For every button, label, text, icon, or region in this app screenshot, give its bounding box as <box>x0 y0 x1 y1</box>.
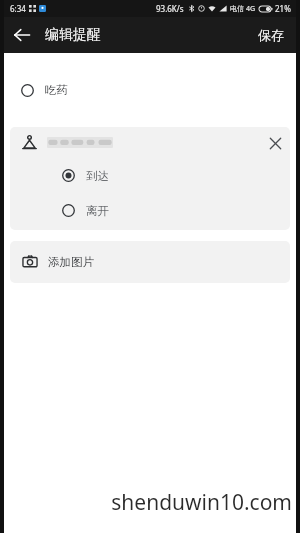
staticText: 吃药 <box>45 83 68 97</box>
staticText: 保存 <box>258 27 284 43</box>
staticText: 到达 <box>86 169 109 183</box>
staticText: 21% <box>275 3 291 14</box>
staticText: 电信 <box>230 4 244 13</box>
staticText: shenduwin10.com <box>111 488 292 517</box>
button[interactable]: 添加图片 <box>10 241 290 283</box>
button[interactable]: Remove location condition <box>260 128 290 158</box>
staticText: 93.6K/s <box>156 3 184 14</box>
button[interactable]: 离开 <box>10 193 290 228</box>
staticText: 6:34 <box>10 3 26 14</box>
button[interactable]: 到达 <box>10 158 290 193</box>
button[interactable]: 保存 <box>246 19 296 51</box>
staticText: 4G <box>246 4 256 14</box>
button[interactable]: Back <box>4 17 40 53</box>
staticText: 添加图片 <box>48 255 94 269</box>
staticText: 编辑提醒 <box>45 26 101 44</box>
staticText: 离开 <box>86 204 109 218</box>
button[interactable]: 吃药 <box>10 64 290 116</box>
